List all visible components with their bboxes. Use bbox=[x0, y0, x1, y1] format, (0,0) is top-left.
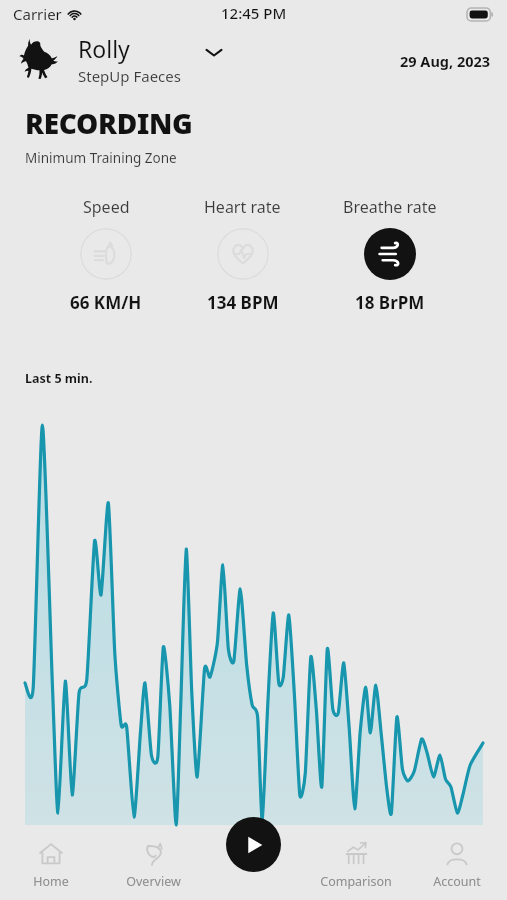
staticText: Home bbox=[33, 873, 69, 890]
staticText: Carrier bbox=[13, 4, 62, 24]
staticText: 66 KM/H bbox=[70, 291, 142, 314]
button[interactable] bbox=[0, 0, 507, 900]
staticText: Rolly bbox=[78, 33, 130, 64]
staticText: RECORDING bbox=[25, 104, 193, 142]
button[interactable]: Speed bbox=[64, 196, 148, 314]
staticText: Heart rate bbox=[204, 196, 281, 218]
staticText: 12:45 PM bbox=[221, 3, 287, 23]
staticText: Minimum Training Zone bbox=[25, 149, 177, 167]
staticText: Account bbox=[433, 873, 481, 890]
button[interactable]: Overview bbox=[102, 837, 204, 894]
button[interactable]: Rolly bbox=[14, 32, 225, 86]
staticText: 134 BPM bbox=[207, 291, 279, 314]
staticText: Comparison bbox=[320, 873, 392, 890]
staticText: Breathe rate bbox=[343, 196, 437, 218]
staticText: 18 BrPM bbox=[355, 291, 425, 314]
staticText: Overview bbox=[126, 873, 181, 890]
button[interactable]: Heart rate bbox=[198, 196, 287, 314]
button[interactable]: Comparison bbox=[305, 837, 406, 894]
staticText: Speed bbox=[83, 196, 130, 218]
button[interactable]: Account bbox=[406, 837, 507, 894]
staticText: StepUp Faeces bbox=[78, 66, 181, 86]
button[interactable]: Play bbox=[226, 817, 281, 872]
button[interactable]: Breathe rate bbox=[337, 196, 443, 314]
staticText: 29 Aug, 2023 bbox=[400, 51, 491, 71]
staticText: Last 5 min. bbox=[25, 370, 93, 387]
button[interactable]: Home bbox=[0, 837, 102, 894]
